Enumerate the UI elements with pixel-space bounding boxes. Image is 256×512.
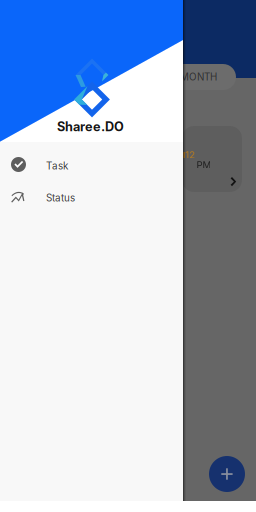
staticText: PM <box>196 159 211 171</box>
button[interactable]: Add event <box>209 456 245 492</box>
staticText: MONTH <box>180 71 217 83</box>
staticText: Task <box>46 160 68 172</box>
staticText: Sharee.DO <box>57 119 124 134</box>
button[interactable]: Status <box>0 180 183 212</box>
staticText: 12 <box>185 149 195 161</box>
staticText: Status <box>46 192 75 204</box>
button[interactable]: Task <box>0 148 183 180</box>
